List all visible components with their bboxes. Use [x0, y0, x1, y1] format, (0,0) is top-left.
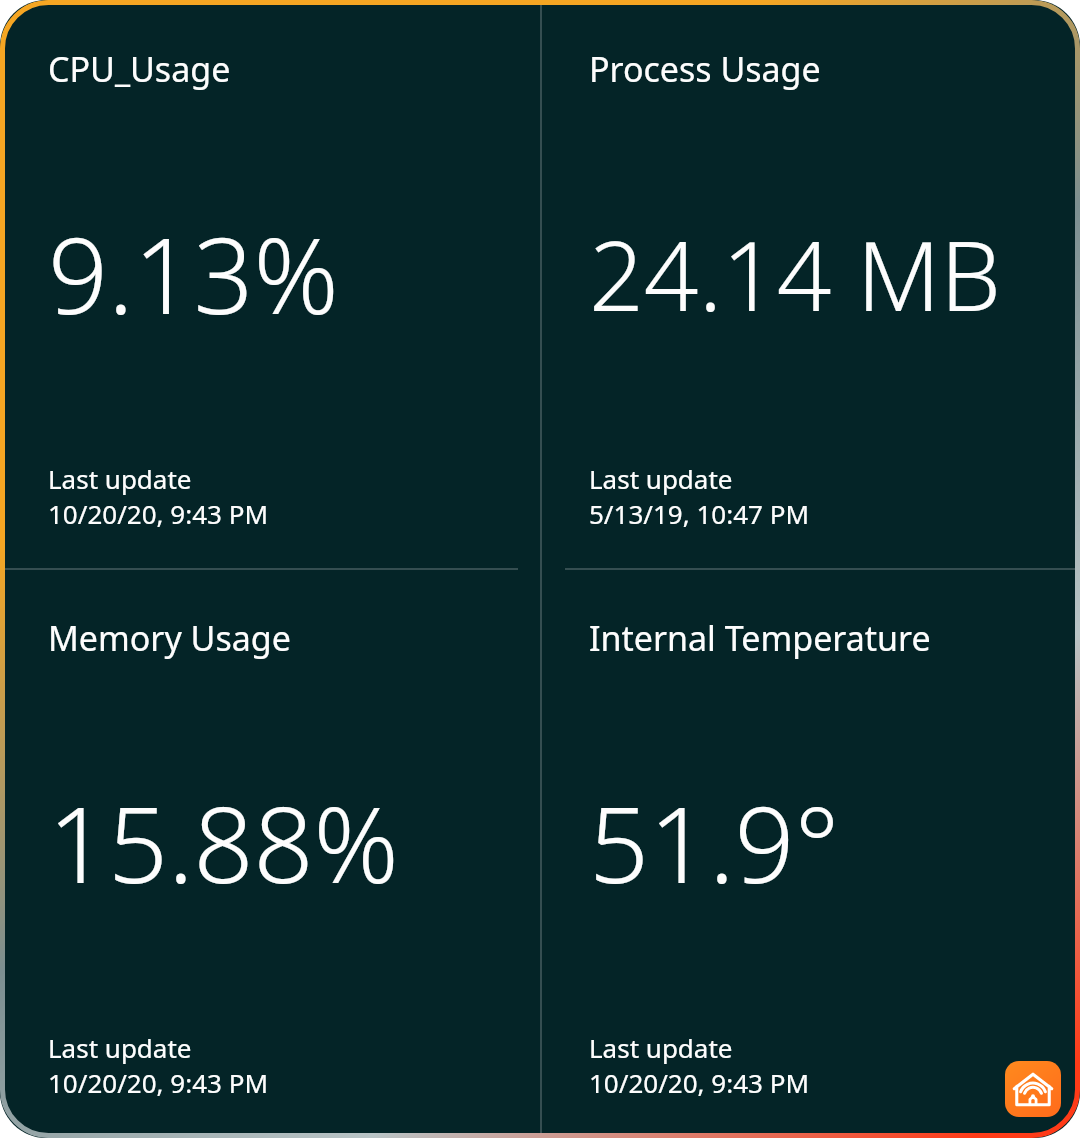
button[interactable]: Home	[1005, 1061, 1061, 1117]
staticText: 51.9°	[589, 771, 840, 914]
staticText: 10/20/20, 9:43 PM	[589, 1065, 809, 1100]
staticText: Last update	[589, 1030, 733, 1065]
staticText: 24.14 MB	[589, 208, 1001, 339]
button[interactable]: Internal Temperature	[541, 569, 1080, 1138]
staticText: Last update	[48, 461, 192, 496]
button[interactable]: Memory Usage	[0, 569, 541, 1138]
staticText: 10/20/20, 9:43 PM	[48, 1065, 268, 1100]
staticText: Last update	[48, 1030, 192, 1065]
staticText: 5/13/19, 10:47 PM	[589, 496, 809, 531]
button[interactable]: Process Usage	[541, 0, 1080, 569]
staticText: CPU_Usage	[48, 46, 231, 92]
button[interactable]: CPU_Usage	[0, 0, 541, 569]
staticText: 10/20/20, 9:43 PM	[48, 496, 268, 531]
staticText: Process Usage	[589, 46, 821, 92]
staticText: Internal Temperature	[589, 615, 931, 661]
staticText: 9.13%	[48, 202, 339, 345]
staticText: Memory Usage	[48, 615, 291, 661]
staticText: Last update	[589, 461, 733, 496]
staticText: 15.88%	[48, 771, 399, 914]
